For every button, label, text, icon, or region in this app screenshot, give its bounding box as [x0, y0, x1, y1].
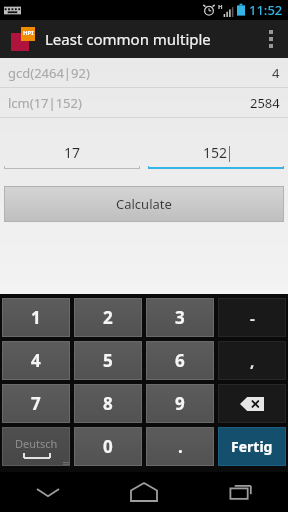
staticText: 6 [175, 349, 185, 372]
staticText: 1 [31, 306, 41, 329]
button[interactable]: 3 [146, 298, 214, 337]
staticText: 9 [175, 392, 185, 415]
staticText: 3 [175, 306, 185, 329]
button[interactable]: 0 [74, 427, 142, 466]
staticText: Fertig [231, 437, 273, 456]
button[interactable]: - [218, 298, 286, 337]
button[interactable]: 1 [2, 298, 70, 337]
button[interactable]: 4 [2, 341, 70, 380]
staticText: Deutsch [15, 436, 58, 451]
staticText: H [218, 3, 223, 11]
button[interactable]: 5 [74, 341, 142, 380]
button[interactable]: Backspace [218, 384, 286, 423]
button[interactable]: Home [96, 472, 192, 512]
button[interactable]: 7 [2, 384, 70, 423]
staticText: gcd(2464|92) [8, 64, 90, 82]
button[interactable]: 2 [74, 298, 142, 337]
staticText: 11:52 [249, 1, 283, 19]
button[interactable]: 6 [146, 341, 214, 380]
staticText: lcm(17|152) [8, 94, 82, 112]
button[interactable]: Fertig [218, 427, 286, 466]
staticText: 4 [272, 64, 280, 82]
staticText: - [250, 308, 255, 328]
staticText: 152 [203, 143, 228, 162]
button[interactable]: Deutsch [2, 427, 70, 466]
button[interactable]: Hide keyboard [0, 472, 96, 512]
button[interactable]: 8 [74, 384, 142, 423]
staticText: 8 [103, 392, 113, 415]
staticText: . [178, 435, 183, 458]
staticText: HPI [23, 29, 34, 37]
button[interactable]: . [146, 427, 214, 466]
button[interactable]: gcd(2464|92) [0, 58, 288, 87]
staticText: Least common multiple [45, 29, 211, 49]
button[interactable]: More options [254, 20, 288, 58]
button[interactable]: 152 [148, 135, 284, 169]
staticText: 17 [64, 143, 81, 162]
button[interactable]: lcm(17|152) [0, 88, 288, 117]
button[interactable]: 9 [146, 384, 214, 423]
staticText: 4 [31, 349, 41, 372]
staticText: 2 [103, 306, 113, 329]
staticText: Calculate [116, 195, 172, 213]
staticText: 0 [103, 435, 113, 458]
staticText: , [250, 351, 255, 371]
button[interactable]: Recent apps [192, 472, 288, 512]
button[interactable]: 17 [4, 135, 140, 169]
staticText: 5 [103, 349, 113, 372]
staticText: 2584 [250, 94, 280, 112]
staticText: 7 [31, 392, 41, 415]
button[interactable]: , [218, 341, 286, 380]
button[interactable]: Calculate [4, 186, 284, 222]
